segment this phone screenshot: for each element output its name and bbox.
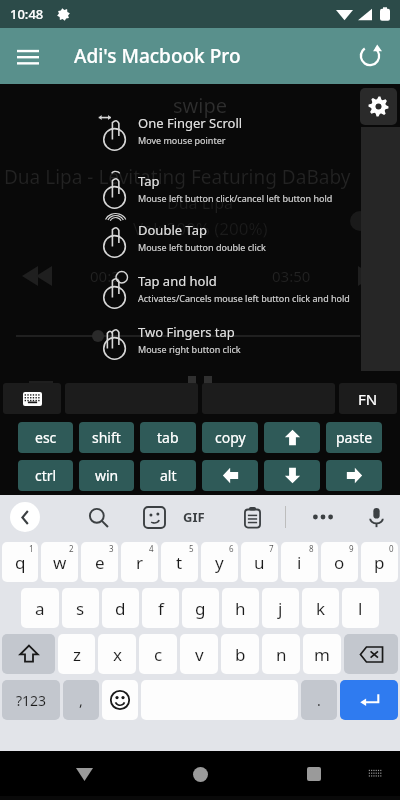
button[interactable]: n	[262, 634, 300, 674]
button[interactable]: o	[321, 542, 358, 582]
staticText: j	[278, 597, 283, 620]
button[interactable]: Shift	[2, 634, 55, 674]
button[interactable]: ctrl	[18, 460, 73, 491]
button[interactable]: a	[21, 588, 59, 628]
button[interactable]: Settings	[360, 88, 397, 125]
button[interactable]: i	[281, 542, 318, 582]
staticText: i	[297, 551, 302, 574]
button[interactable]: l	[342, 588, 379, 628]
button[interactable]: c	[139, 634, 177, 674]
staticText: n	[276, 643, 287, 666]
button[interactable]: v	[180, 634, 218, 674]
staticText: win	[95, 466, 119, 485]
button[interactable]: y	[201, 542, 238, 582]
button[interactable]: LEFT	[202, 460, 258, 491]
staticText: Mouse right button click	[138, 343, 241, 355]
staticText: tab	[157, 428, 179, 447]
button[interactable]: d	[102, 588, 139, 628]
button[interactable]: f	[142, 588, 179, 628]
button[interactable]: m	[303, 634, 341, 674]
button[interactable]: q	[2, 542, 38, 582]
button[interactable]: g	[182, 588, 219, 628]
button[interactable]: j	[262, 588, 299, 628]
button[interactable]: Search	[78, 497, 118, 537]
button[interactable]: Emoji	[102, 680, 138, 720]
button[interactable]: Enter	[340, 680, 398, 720]
button[interactable]: b	[221, 634, 259, 674]
staticText: Tap and hold	[138, 272, 217, 290]
staticText: l	[358, 597, 363, 620]
button[interactable]: Show keyboard	[3, 383, 61, 414]
staticText: ctrl	[35, 466, 57, 485]
staticText: FN	[358, 389, 378, 409]
button[interactable]: More options	[303, 497, 343, 537]
staticText: Vol: 200% (200%)	[133, 217, 268, 240]
button[interactable]: paste	[326, 422, 382, 453]
button[interactable]: Voice input	[356, 497, 396, 537]
button[interactable]: FN	[339, 383, 397, 414]
button[interactable]: w	[41, 542, 78, 582]
button[interactable]: z	[58, 634, 95, 674]
staticText: 7	[269, 543, 274, 554]
button[interactable]: Stickers	[134, 497, 174, 537]
button[interactable]: s	[62, 588, 99, 628]
staticText: alt	[160, 466, 177, 485]
staticText: 9	[349, 543, 354, 554]
button[interactable]: Home	[180, 754, 220, 794]
staticText: x	[113, 643, 122, 666]
button[interactable]: t	[161, 542, 198, 582]
button[interactable]: u	[241, 542, 278, 582]
button[interactable]: copy	[202, 422, 258, 453]
button[interactable]: Backspace	[344, 634, 398, 674]
staticText: e	[95, 551, 105, 574]
button[interactable]: DOWN	[264, 460, 320, 491]
button[interactable]: Menu	[6, 34, 50, 78]
button[interactable]: Recents	[294, 754, 334, 794]
button[interactable]: r	[121, 542, 158, 582]
staticText: b	[235, 643, 246, 666]
button[interactable]: Clipboard	[232, 497, 272, 537]
button[interactable]: Back	[64, 754, 104, 794]
staticText: shift	[92, 428, 121, 447]
staticText: 3	[109, 543, 114, 554]
staticText: 8	[309, 543, 314, 554]
button[interactable]: tab	[140, 422, 196, 453]
button[interactable]: ,	[63, 680, 99, 720]
button[interactable]: alt	[140, 460, 196, 491]
staticText: Two Fingers tap	[138, 323, 235, 341]
button[interactable]: shift	[79, 422, 134, 453]
staticText: z	[73, 643, 81, 666]
staticText: Mouse left button click/cancel left butt…	[138, 192, 333, 204]
button[interactable]: .	[301, 680, 337, 720]
staticText: .	[317, 691, 321, 710]
staticText: p	[374, 551, 385, 574]
staticText: d	[115, 597, 126, 620]
staticText: 00:3	[90, 266, 120, 286]
button[interactable]: win	[79, 460, 134, 491]
button[interactable]: e	[81, 542, 118, 582]
staticText: r	[136, 551, 144, 574]
staticText: Adi's Macbook Pro	[74, 43, 241, 69]
button[interactable]: p	[361, 542, 398, 582]
staticText: 4	[149, 543, 154, 554]
button[interactable]: Refresh	[348, 34, 392, 78]
button[interactable]: x	[98, 634, 136, 674]
button[interactable]: ?123	[2, 680, 60, 720]
button[interactable]: RIGHT	[326, 460, 382, 491]
button[interactable]	[264, 422, 320, 453]
button[interactable]: GIF	[174, 497, 214, 537]
button[interactable]: esc	[18, 422, 73, 453]
button[interactable]: Switch keyboard	[360, 758, 392, 790]
staticText: 6	[229, 543, 234, 554]
staticText: swipe	[173, 92, 228, 119]
staticText: Double Tap	[138, 221, 207, 239]
staticText: Activates/Cancels mouse left button clic…	[138, 292, 350, 304]
button[interactable]: Back	[10, 502, 40, 532]
staticText: Dua Lipa	[167, 192, 234, 214]
button[interactable]: k	[302, 588, 339, 628]
button[interactable]: h	[222, 588, 259, 628]
staticText: 10:48	[10, 5, 44, 23]
